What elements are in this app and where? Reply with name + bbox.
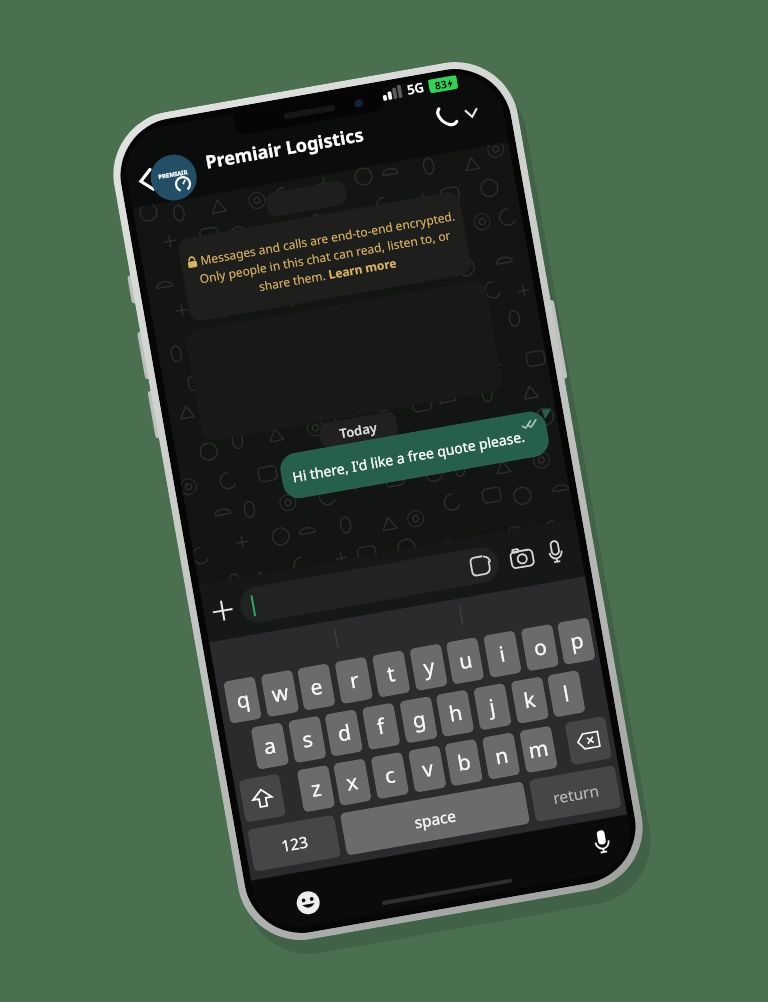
button[interactable]	[237, 544, 502, 625]
button[interactable]	[433, 100, 479, 131]
staticText: f	[375, 711, 388, 741]
staticText: z	[309, 773, 323, 804]
button[interactable]: d	[324, 709, 363, 757]
button[interactable]: p	[557, 617, 596, 665]
staticText: share them. Learn more	[257, 254, 398, 294]
button[interactable]: x	[333, 758, 372, 806]
staticText: 5G	[406, 81, 425, 99]
button[interactable]: y	[409, 643, 448, 691]
staticText: y	[421, 652, 437, 682]
staticText: a	[261, 731, 278, 761]
button[interactable]: e	[297, 663, 336, 711]
button[interactable]: g	[399, 696, 438, 744]
button[interactable]: n	[482, 732, 521, 780]
staticText: u	[457, 645, 474, 676]
button[interactable]: j	[473, 683, 512, 731]
staticText: m	[526, 733, 551, 765]
staticText: j	[487, 692, 498, 721]
staticText: g	[410, 704, 428, 735]
button[interactable]: u	[446, 637, 485, 685]
button[interactable]	[588, 827, 615, 855]
button[interactable]	[506, 542, 538, 574]
staticText: c	[382, 760, 398, 791]
staticText: Only people in this chat can read, liste…	[198, 226, 452, 286]
staticText: k	[521, 685, 538, 715]
button[interactable]: c	[370, 752, 409, 800]
staticText: n	[493, 740, 510, 771]
staticText: b	[455, 747, 473, 778]
staticText: 123	[279, 830, 310, 856]
staticText: o	[531, 632, 549, 663]
button[interactable]: w	[260, 669, 299, 717]
staticText: l	[561, 679, 572, 708]
button[interactable]: z	[296, 765, 335, 813]
button[interactable]: f	[362, 702, 401, 750]
button[interactable]: return	[529, 765, 622, 822]
staticText: e	[308, 672, 325, 702]
button[interactable]	[133, 166, 159, 195]
staticText: Hi there, I'd like a free quote please.	[291, 427, 527, 486]
button[interactable]	[208, 596, 238, 626]
button[interactable]: h	[436, 689, 475, 737]
button[interactable]: b	[444, 739, 483, 786]
button[interactable]: m	[519, 725, 558, 773]
button[interactable]: t	[372, 650, 411, 698]
button[interactable]: space	[340, 781, 530, 856]
staticText: t	[385, 659, 398, 689]
button[interactable]	[238, 773, 286, 823]
button[interactable]: v	[408, 745, 447, 793]
staticText: w	[269, 678, 291, 709]
staticText: Today	[338, 418, 379, 442]
staticText: v	[420, 754, 436, 784]
staticText: p	[568, 626, 586, 656]
staticText: i	[497, 639, 508, 669]
staticText: 83	[434, 77, 449, 93]
button[interactable]: i	[483, 630, 522, 678]
button[interactable]	[293, 887, 323, 917]
button[interactable]: l	[547, 670, 586, 718]
staticText: h	[447, 698, 464, 729]
button[interactable]: 123	[247, 814, 341, 872]
button[interactable]: k	[510, 676, 549, 724]
staticText: Premiair Logistics	[203, 122, 366, 175]
staticText: space	[412, 804, 457, 832]
staticText: s	[300, 724, 316, 755]
staticText: PREMIAIR	[158, 168, 189, 181]
button[interactable]: q	[223, 676, 262, 724]
staticText: Messages and calls are end-to-end encryp…	[199, 207, 457, 268]
button[interactable]: s	[288, 715, 327, 763]
staticText: q	[234, 685, 252, 715]
staticText: d	[335, 717, 353, 748]
button[interactable]: r	[334, 656, 373, 704]
staticText: r	[347, 665, 361, 695]
button[interactable]	[542, 538, 569, 566]
button[interactable]: o	[520, 624, 559, 672]
staticText: return	[551, 779, 600, 808]
button[interactable]: a	[250, 722, 289, 770]
button[interactable]	[564, 716, 612, 765]
staticText: x	[344, 767, 361, 797]
